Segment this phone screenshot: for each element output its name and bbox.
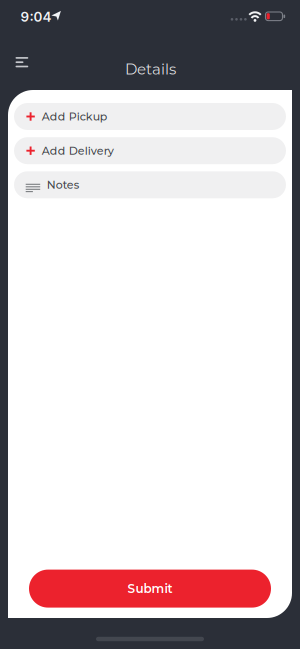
button[interactable]: Submit <box>29 570 271 608</box>
staticText: Notes <box>47 178 80 191</box>
button[interactable]: Add Delivery <box>14 137 286 164</box>
staticText: Submit <box>127 581 172 596</box>
staticText: 9:04 <box>20 9 51 25</box>
staticText: Add Pickup <box>42 110 108 123</box>
button[interactable]: Menu <box>11 52 33 72</box>
button[interactable]: Add Pickup <box>14 103 286 130</box>
staticText: Details <box>125 60 176 78</box>
button[interactable]: Notes <box>14 171 286 198</box>
staticText: Add Delivery <box>42 144 114 157</box>
